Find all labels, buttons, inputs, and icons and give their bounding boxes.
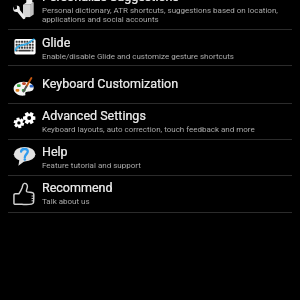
staticText: Feature tutorial and support bbox=[42, 161, 141, 170]
button[interactable]: Help bbox=[0, 140, 300, 175]
staticText: Enable/disable Glide and customize gestu… bbox=[42, 52, 234, 61]
staticText: Keyboard Customization bbox=[42, 76, 179, 91]
button[interactable]: Advanced settings bbox=[0, 104, 300, 139]
staticText: Advanced Settings bbox=[42, 108, 146, 123]
staticText: Help bbox=[42, 144, 68, 159]
staticText: Talk about us bbox=[42, 197, 90, 206]
other: Recommend bbox=[13, 181, 37, 205]
staticText: Keyboard layouts, auto correction, touch… bbox=[42, 125, 255, 134]
staticText: Personalize Suggestions bbox=[42, 0, 179, 4]
staticText: Glide bbox=[42, 35, 71, 50]
button[interactable]: Personalize suggestions bbox=[0, 0, 300, 29]
other: Advanced settings bbox=[13, 107, 37, 131]
button[interactable]: Glide bbox=[0, 30, 300, 65]
staticText: Personal dictionary, ATR shortcuts, sugg… bbox=[42, 6, 278, 24]
button[interactable]: Keyboard customization bbox=[0, 66, 300, 103]
button[interactable]: Recommend bbox=[0, 176, 300, 212]
staticText: Recommend bbox=[42, 180, 113, 195]
other: Help bbox=[13, 144, 37, 168]
other: Glide bbox=[13, 36, 37, 60]
other: Keyboard customization bbox=[13, 77, 37, 101]
other: Personalize suggestions bbox=[13, 1, 37, 25]
